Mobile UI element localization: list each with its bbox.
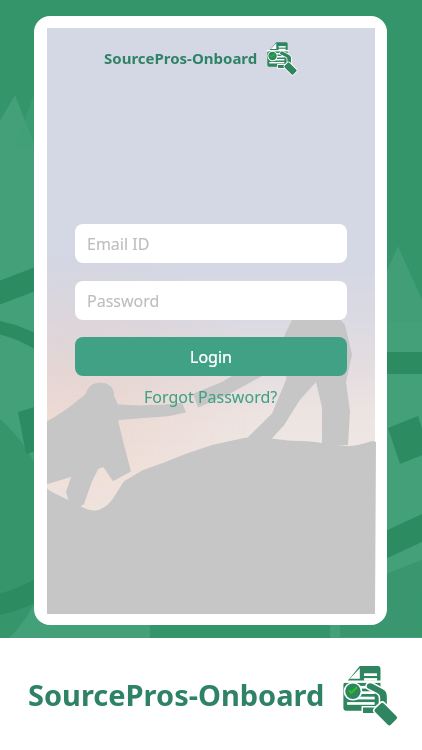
staticText: Forgot Password? [144, 386, 278, 408]
button[interactable]: Password [75, 281, 347, 320]
staticText: SourcePros-Onboard [28, 675, 325, 714]
button[interactable]: Email ID [75, 224, 347, 263]
staticText: Email ID [87, 233, 150, 255]
staticText: Login [190, 346, 232, 368]
staticText: Password [87, 290, 160, 312]
staticText: SourcePros-Onboard [104, 48, 258, 68]
button[interactable]: Forgot Password? [140, 382, 282, 412]
button[interactable]: Login [75, 337, 347, 376]
